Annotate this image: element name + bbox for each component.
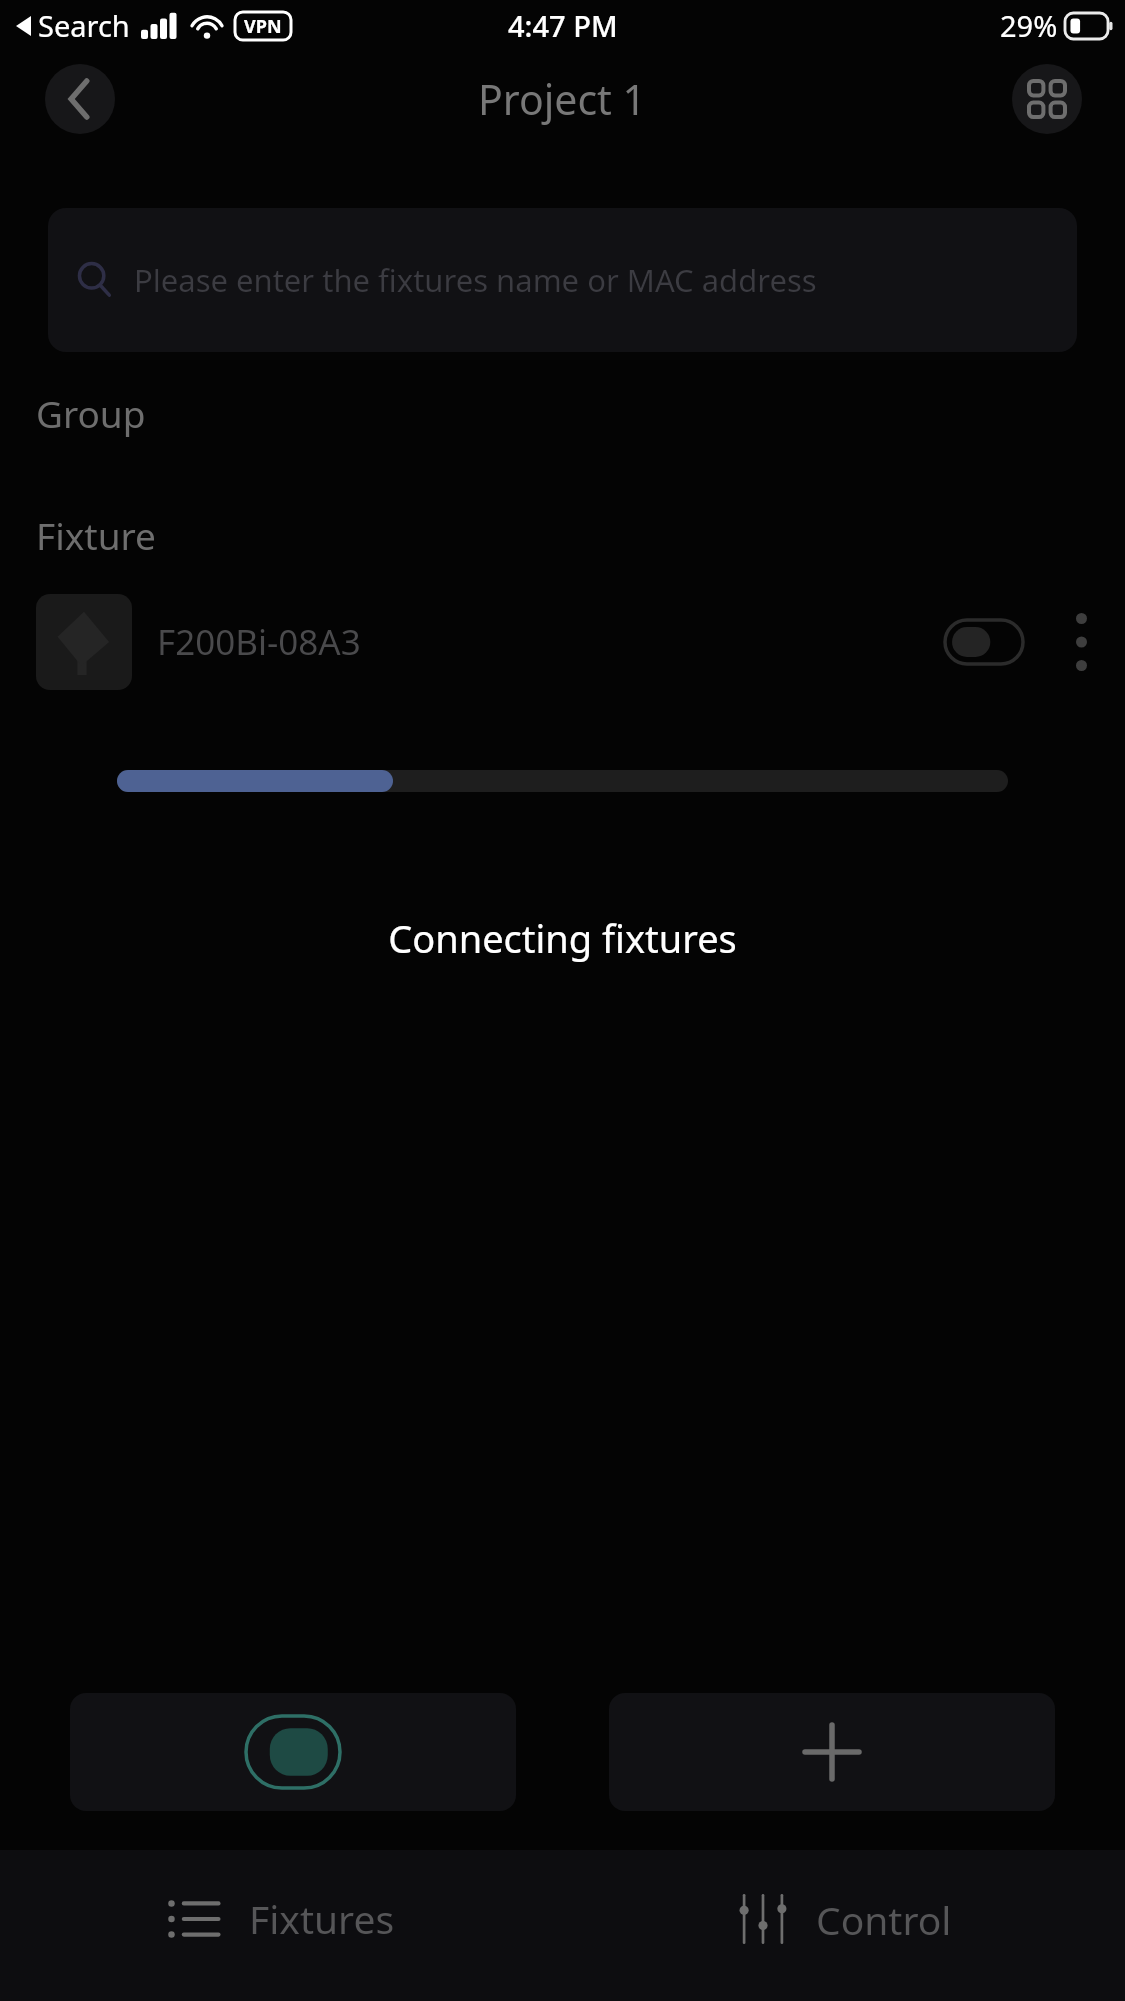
staticText: VPN bbox=[244, 14, 282, 39]
staticText: F200Bi-08A3 bbox=[157, 618, 361, 666]
button[interactable]: F200Bi-08A3 bbox=[0, 592, 1125, 692]
staticText: Project 1 bbox=[478, 71, 647, 127]
button[interactable]: Please enter the fixtures name or MAC ad… bbox=[48, 208, 1077, 352]
button[interactable]: Master power bbox=[70, 1693, 516, 1811]
staticText: Fixture bbox=[36, 510, 156, 560]
button[interactable]: Grid view bbox=[1012, 64, 1082, 134]
button[interactable]: Add fixture bbox=[609, 1693, 1055, 1811]
button[interactable]: More options bbox=[1061, 606, 1101, 678]
staticText: Please enter the fixtures name or MAC ad… bbox=[134, 259, 817, 301]
button[interactable]: Control bbox=[562, 1850, 1125, 2001]
staticText: Connecting fixtures bbox=[0, 912, 1125, 964]
staticText: Control bbox=[816, 1893, 952, 1946]
staticText: Search bbox=[38, 6, 130, 45]
staticText: 4:47 PM bbox=[508, 6, 618, 45]
button[interactable]: Fixture power toggle bbox=[945, 620, 1023, 664]
staticText: Group bbox=[36, 388, 146, 438]
button[interactable]: Fixtures bbox=[0, 1850, 562, 2001]
staticText: Fixtures bbox=[249, 1892, 395, 1945]
button[interactable]: Back bbox=[45, 64, 115, 134]
staticText: 29% bbox=[1000, 6, 1058, 45]
